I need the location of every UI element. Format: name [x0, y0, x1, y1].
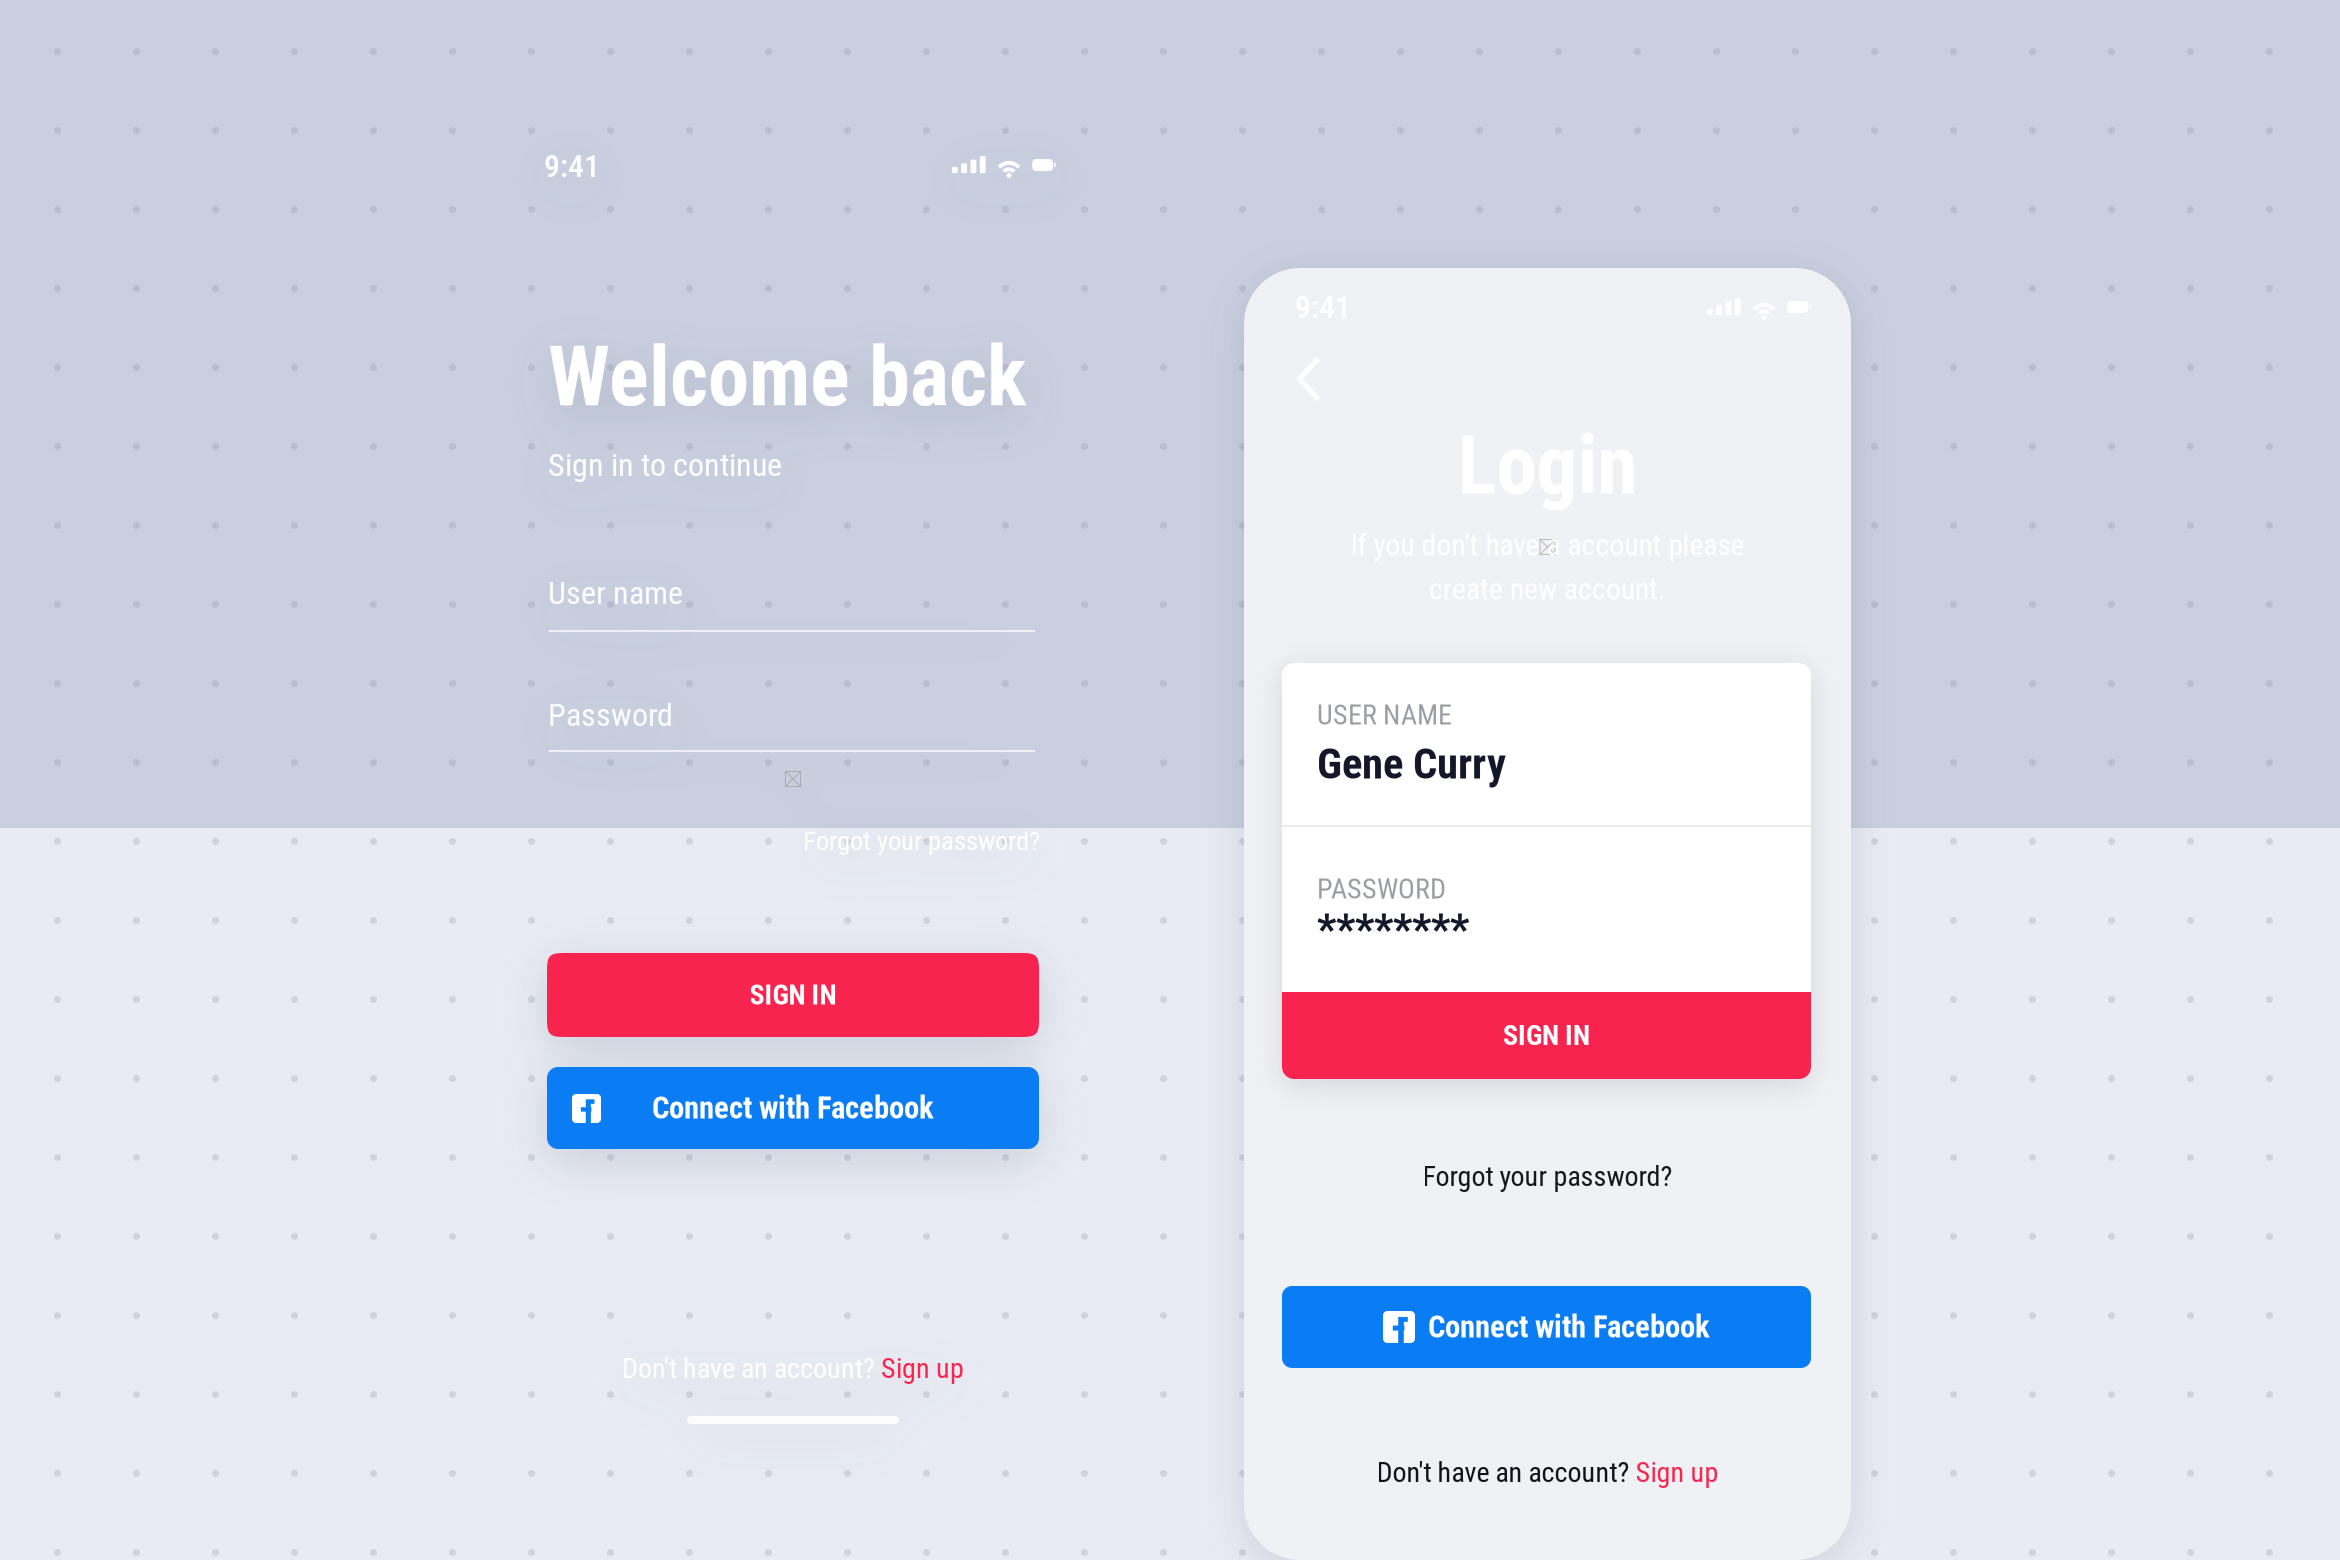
button[interactable]: Connect with Facebook: [547, 1067, 1039, 1149]
button[interactable]: SIGN IN: [1282, 992, 1811, 1079]
button[interactable]: Sign up: [1635, 1456, 1718, 1489]
staticText: Don't have an account?: [622, 1352, 881, 1385]
button[interactable]: Back: [1278, 348, 1340, 410]
staticText: 9:41: [544, 147, 600, 185]
button[interactable]: Connect with Facebook: [1282, 1286, 1811, 1368]
staticText: Connect with Facebook: [1428, 1309, 1710, 1345]
staticText: SIGN IN: [1503, 1019, 1590, 1052]
image: [785, 771, 801, 787]
button[interactable]: Forgot your password?: [803, 825, 1040, 857]
staticText: If you don't have a account please: [1350, 528, 1744, 562]
staticText: USER NAME: [1317, 699, 1452, 731]
staticText: User name: [548, 574, 683, 612]
button[interactable]: Forgot your password?: [1422, 1160, 1672, 1193]
button[interactable]: Sign up: [881, 1352, 964, 1385]
staticText: Connect with Facebook: [652, 1090, 934, 1126]
staticText: Password: [548, 696, 673, 734]
staticText: Welcome back: [548, 329, 1027, 425]
staticText: 9:41: [1295, 288, 1351, 326]
staticText: Login: [1457, 418, 1637, 513]
staticText: Don't have an account?: [1376, 1456, 1635, 1489]
staticText: Sign up: [1635, 1456, 1718, 1489]
button[interactable]: SIGN IN: [547, 953, 1039, 1037]
staticText: PASSWORD: [1317, 873, 1446, 905]
staticText: Forgot your password?: [803, 825, 1040, 857]
staticText: Gene Curry: [1317, 739, 1506, 789]
staticText: Sign up: [881, 1352, 964, 1385]
staticText: ********: [1317, 904, 1469, 954]
staticText: SIGN IN: [749, 979, 836, 1011]
staticText: create new account.: [1429, 572, 1666, 606]
staticText: Forgot your password?: [1422, 1160, 1672, 1193]
image: [1539, 539, 1555, 555]
staticText: Sign in to continue: [548, 446, 782, 484]
